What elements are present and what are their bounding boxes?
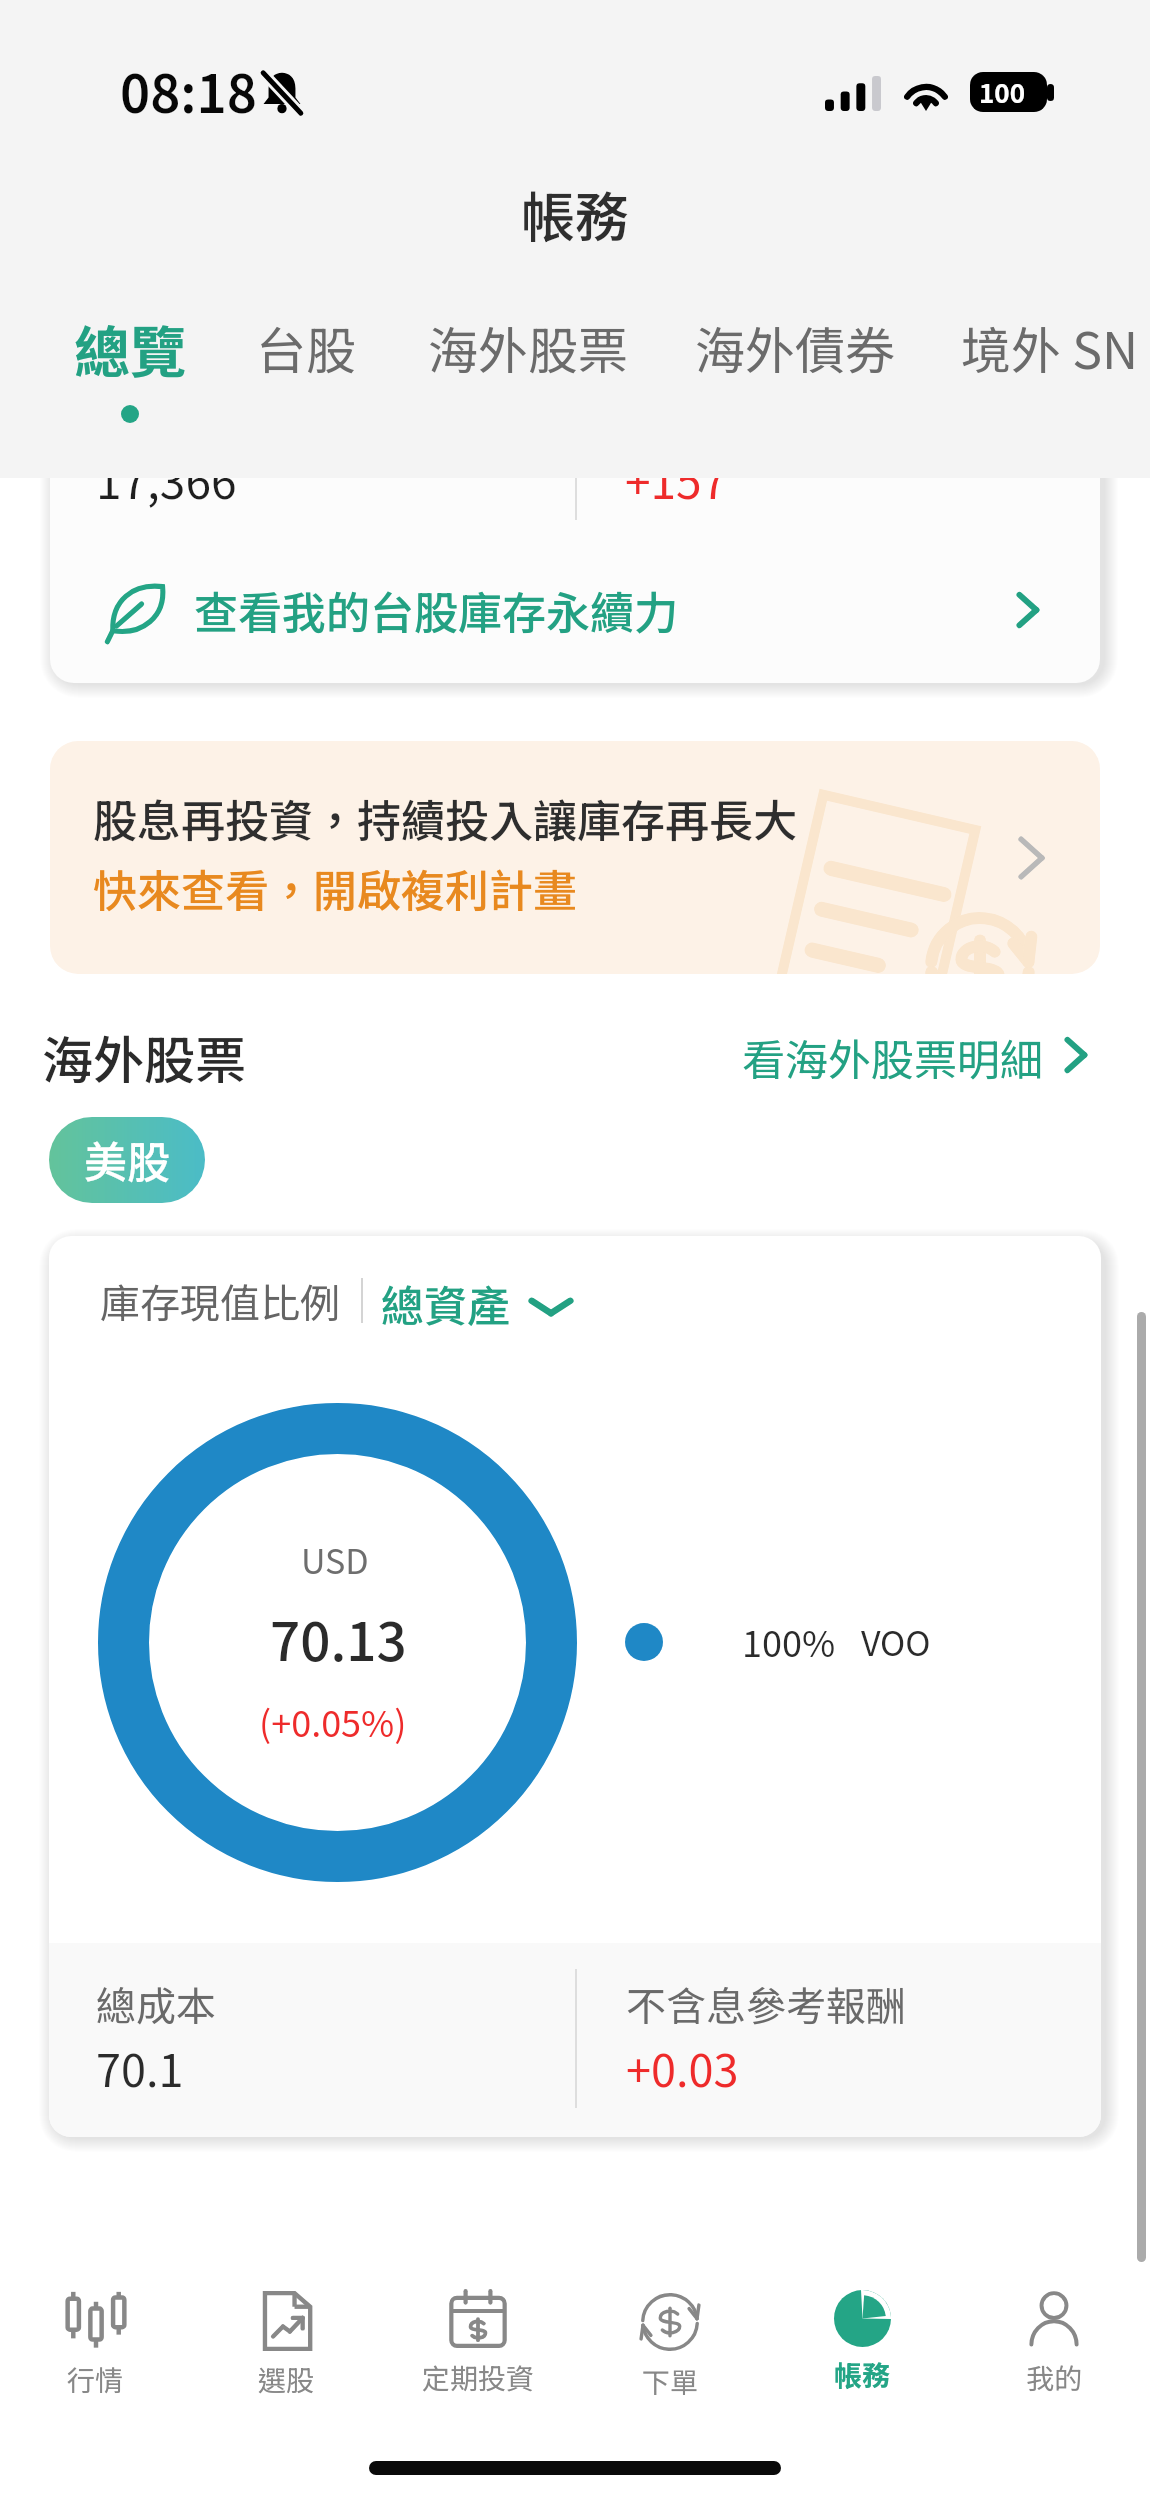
staticText: 總資產 [381, 1272, 510, 1334]
staticText: 境外 SN [961, 311, 1139, 383]
staticText: 台股 [256, 311, 356, 383]
button[interactable]: 台股 [256, 311, 356, 383]
staticText: 海外股票 [428, 311, 628, 383]
staticText: +0.03 [626, 2035, 739, 2100]
button[interactable]: 總資產 [381, 1272, 574, 1334]
staticText: 100% [742, 1615, 836, 1667]
staticText: 帳務 [521, 174, 629, 252]
button[interactable]: 海外債券 [695, 311, 895, 383]
staticText: 08:18 [120, 53, 257, 128]
staticText: VOO [861, 1617, 931, 1666]
staticText: 帳務 [834, 2354, 891, 2395]
button[interactable]: 我的 [958, 2190, 1150, 2398]
staticText: 快來查看，開啟複利計畫 [93, 856, 577, 920]
staticText: 看海外股票明細 [742, 1026, 1043, 1088]
button[interactable]: 境外 SN [961, 311, 1139, 383]
button[interactable]: 看海外股票明細 [742, 1026, 1086, 1088]
button[interactable]: 定期投資 [382, 2190, 574, 2398]
staticText: USD [301, 1535, 369, 1584]
staticText: (+0.05%) [259, 1695, 407, 1747]
staticText: 100 [979, 73, 1026, 111]
staticText: 17,366 [96, 446, 237, 513]
staticText: 查看我的台股庫存永續力 [194, 578, 678, 642]
other: Open [1018, 832, 1044, 884]
staticText: 定期投資 [422, 2357, 535, 2398]
button[interactable]: 帳務 [766, 2190, 958, 2395]
staticText: 選股 [258, 2359, 315, 2400]
button[interactable]: 查看我的台股庫存永續力 [50, 552, 1100, 683]
staticText: 總覽 [74, 308, 186, 389]
other: Open [1017, 589, 1038, 631]
staticText: 行情 [67, 2359, 124, 2400]
button[interactable]: 總覽 [74, 308, 186, 423]
staticText: 我的 [1026, 2357, 1083, 2398]
staticText: 美股 [84, 1128, 170, 1190]
button[interactable]: 選股 [191, 2190, 382, 2400]
button[interactable]: 海外股票 [428, 311, 628, 383]
button[interactable]: 行情 [0, 2190, 191, 2400]
staticText: +157 [625, 446, 728, 513]
staticText: 海外債券 [695, 311, 895, 383]
staticText: 70.13 [270, 1600, 407, 1677]
button[interactable]: 美股 [49, 1117, 205, 1203]
button[interactable]: 下單 [574, 2190, 766, 2402]
staticText: 股息再投資，持續投入讓庫存再長大 [93, 786, 797, 850]
staticText: 不含息參考報酬 [626, 1975, 906, 2033]
staticText: 下單 [642, 2361, 699, 2402]
staticText: 海外股票 [42, 1020, 247, 1094]
button[interactable]: 股息再投資，持續投入讓庫存再長大 [50, 741, 1100, 974]
staticText: 總成本 [96, 1975, 216, 2033]
staticText: 70.1 [96, 2035, 184, 2100]
staticText: 庫存現值比例 [100, 1272, 340, 1330]
